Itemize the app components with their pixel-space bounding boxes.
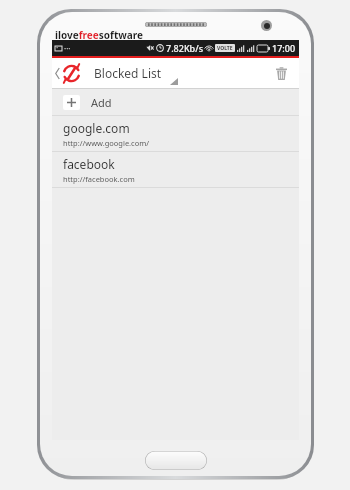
button[interactable]: google.com: [52, 116, 299, 151]
button[interactable]: Delete all: [268, 60, 294, 86]
staticText: facebook: [63, 156, 115, 172]
staticText: ···: [64, 43, 71, 54]
button[interactable]: facebook: [52, 152, 299, 187]
staticText: VOLTE: [217, 45, 233, 52]
staticText: Add: [91, 95, 112, 110]
staticText: http://www.google.com/: [63, 138, 150, 148]
staticText: 7.82Kb/s: [166, 42, 203, 54]
button[interactable]: Blocked List: [52, 58, 299, 88]
staticText: Blocked List: [94, 65, 162, 81]
button[interactable]: Add: [52, 89, 299, 115]
staticText: ilovefreesoftware: [55, 28, 144, 42]
staticText: 17:00: [272, 42, 296, 54]
staticText: http://facebook.com: [63, 174, 135, 184]
staticText: google.com: [63, 120, 130, 136]
